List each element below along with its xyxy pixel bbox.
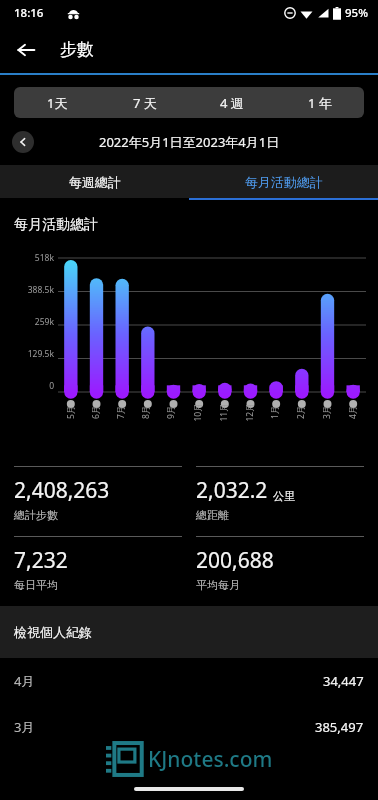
staticText: 2,408,263 [14,476,110,505]
staticText: 平均每月 [196,578,240,592]
staticText: 8月 [140,405,152,419]
button[interactable]: 7 天 [101,87,188,118]
staticText: 每週總計 [69,174,121,190]
staticText: 95% [345,5,368,21]
staticText: 步數 [60,39,94,60]
staticText: 12月 [243,402,255,421]
staticText: 0 [49,380,54,392]
staticText: 每月活動總計 [245,174,323,190]
staticText: 公里 [273,489,295,503]
staticText: 2022年5月1日至2023年4月1日 [99,133,280,151]
button[interactable]: 1天 [14,87,101,118]
staticText: 3月 [14,718,35,736]
staticText: 7,232 [14,546,68,575]
staticText: 1 年 [308,94,332,112]
button[interactable]: 檢視個人紀錄 [0,606,378,658]
button[interactable]: 1 年 [276,87,364,118]
button[interactable]: 每週總計 [0,165,189,198]
staticText: 3月 [321,405,333,419]
staticText: 200,688 [196,546,274,575]
button[interactable]: Back [6,30,46,70]
staticText: 385,497 [315,718,364,736]
staticText: 7月 [115,405,127,419]
button[interactable]: 每月活動總計 [189,165,378,198]
staticText: 259k [34,316,54,328]
staticText: 6月 [90,405,102,419]
staticText: 每月活動總計 [14,216,98,234]
staticText: 2月 [295,405,307,419]
staticText: 5月 [65,405,77,419]
staticText: KJnotes.com [148,745,273,774]
button[interactable]: 7,232 [14,536,182,592]
button[interactable]: 2,032.2 [196,466,364,522]
staticText: 129.5k [27,348,54,360]
staticText: 4月 [14,672,35,690]
staticText: 每日平均 [14,578,58,592]
button[interactable]: 4 週 [188,87,276,118]
staticText: 總距離 [196,508,229,522]
staticText: 7 天 [133,94,157,112]
button[interactable]: Previous period [12,131,34,153]
button[interactable]: 3月 [0,704,378,750]
staticText: 9月 [165,405,177,419]
staticText: 2,032.2 [196,476,268,505]
staticText: 34,447 [323,672,364,690]
staticText: 518k [34,252,54,264]
button[interactable]: 2,408,263 [14,466,182,522]
staticText: 11月 [217,402,229,421]
button[interactable]: 4月 [0,658,378,704]
staticText: 檢視個人紀錄 [14,624,92,640]
staticText: 總計步數 [14,508,58,522]
staticText: 18:16 [14,5,44,21]
button[interactable]: 200,688 [196,536,364,592]
staticText: 388.5k [27,284,54,296]
staticText: 4月 [347,405,359,419]
staticText: 4 週 [220,94,244,112]
staticText: 1天 [47,94,68,112]
staticText: 10月 [191,402,203,421]
staticText: 1月 [269,405,281,419]
